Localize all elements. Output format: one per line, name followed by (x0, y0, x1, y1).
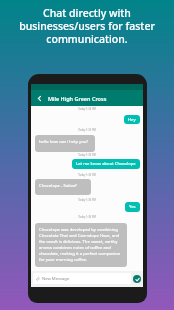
button[interactable]: Back (31, 90, 48, 106)
staticText: Today 1:36 PM (31, 215, 143, 219)
staticText: Today 1:35 PM (31, 128, 143, 132)
staticText: Today 1:34 PM (31, 107, 143, 111)
button[interactable]: Yes (125, 202, 140, 212)
staticText: Today 1:36 PM (31, 198, 143, 202)
button[interactable]: Chocolope was developed by combining Cho… (35, 223, 127, 267)
button[interactable]: Let me know about Chocolope (72, 159, 140, 169)
button[interactable]: hello how can i help you? (35, 135, 95, 152)
staticText: Mile High Green Cross (48, 95, 107, 102)
button[interactable]: Hey (124, 115, 140, 124)
staticText: Today 1:36 PM (31, 153, 143, 157)
staticText: Yes (129, 204, 136, 210)
staticText: Chocolope - Sativa? (39, 183, 77, 189)
staticText: Hey (128, 117, 136, 123)
staticText: hello how can i help you? (39, 139, 89, 145)
staticText: Chocolope was developed by combining Cho… (39, 227, 123, 263)
button[interactable]: Chocolope - Sativa? (35, 179, 91, 195)
staticText: Today 1:36 PM (31, 173, 143, 177)
staticText: Let me know about Chocolope (76, 161, 136, 167)
button[interactable]: Send (133, 275, 141, 283)
staticText: New Message (42, 276, 70, 282)
staticText: Chat directly with businesses/users for … (4, 6, 170, 46)
button[interactable]: New Message (33, 273, 131, 284)
